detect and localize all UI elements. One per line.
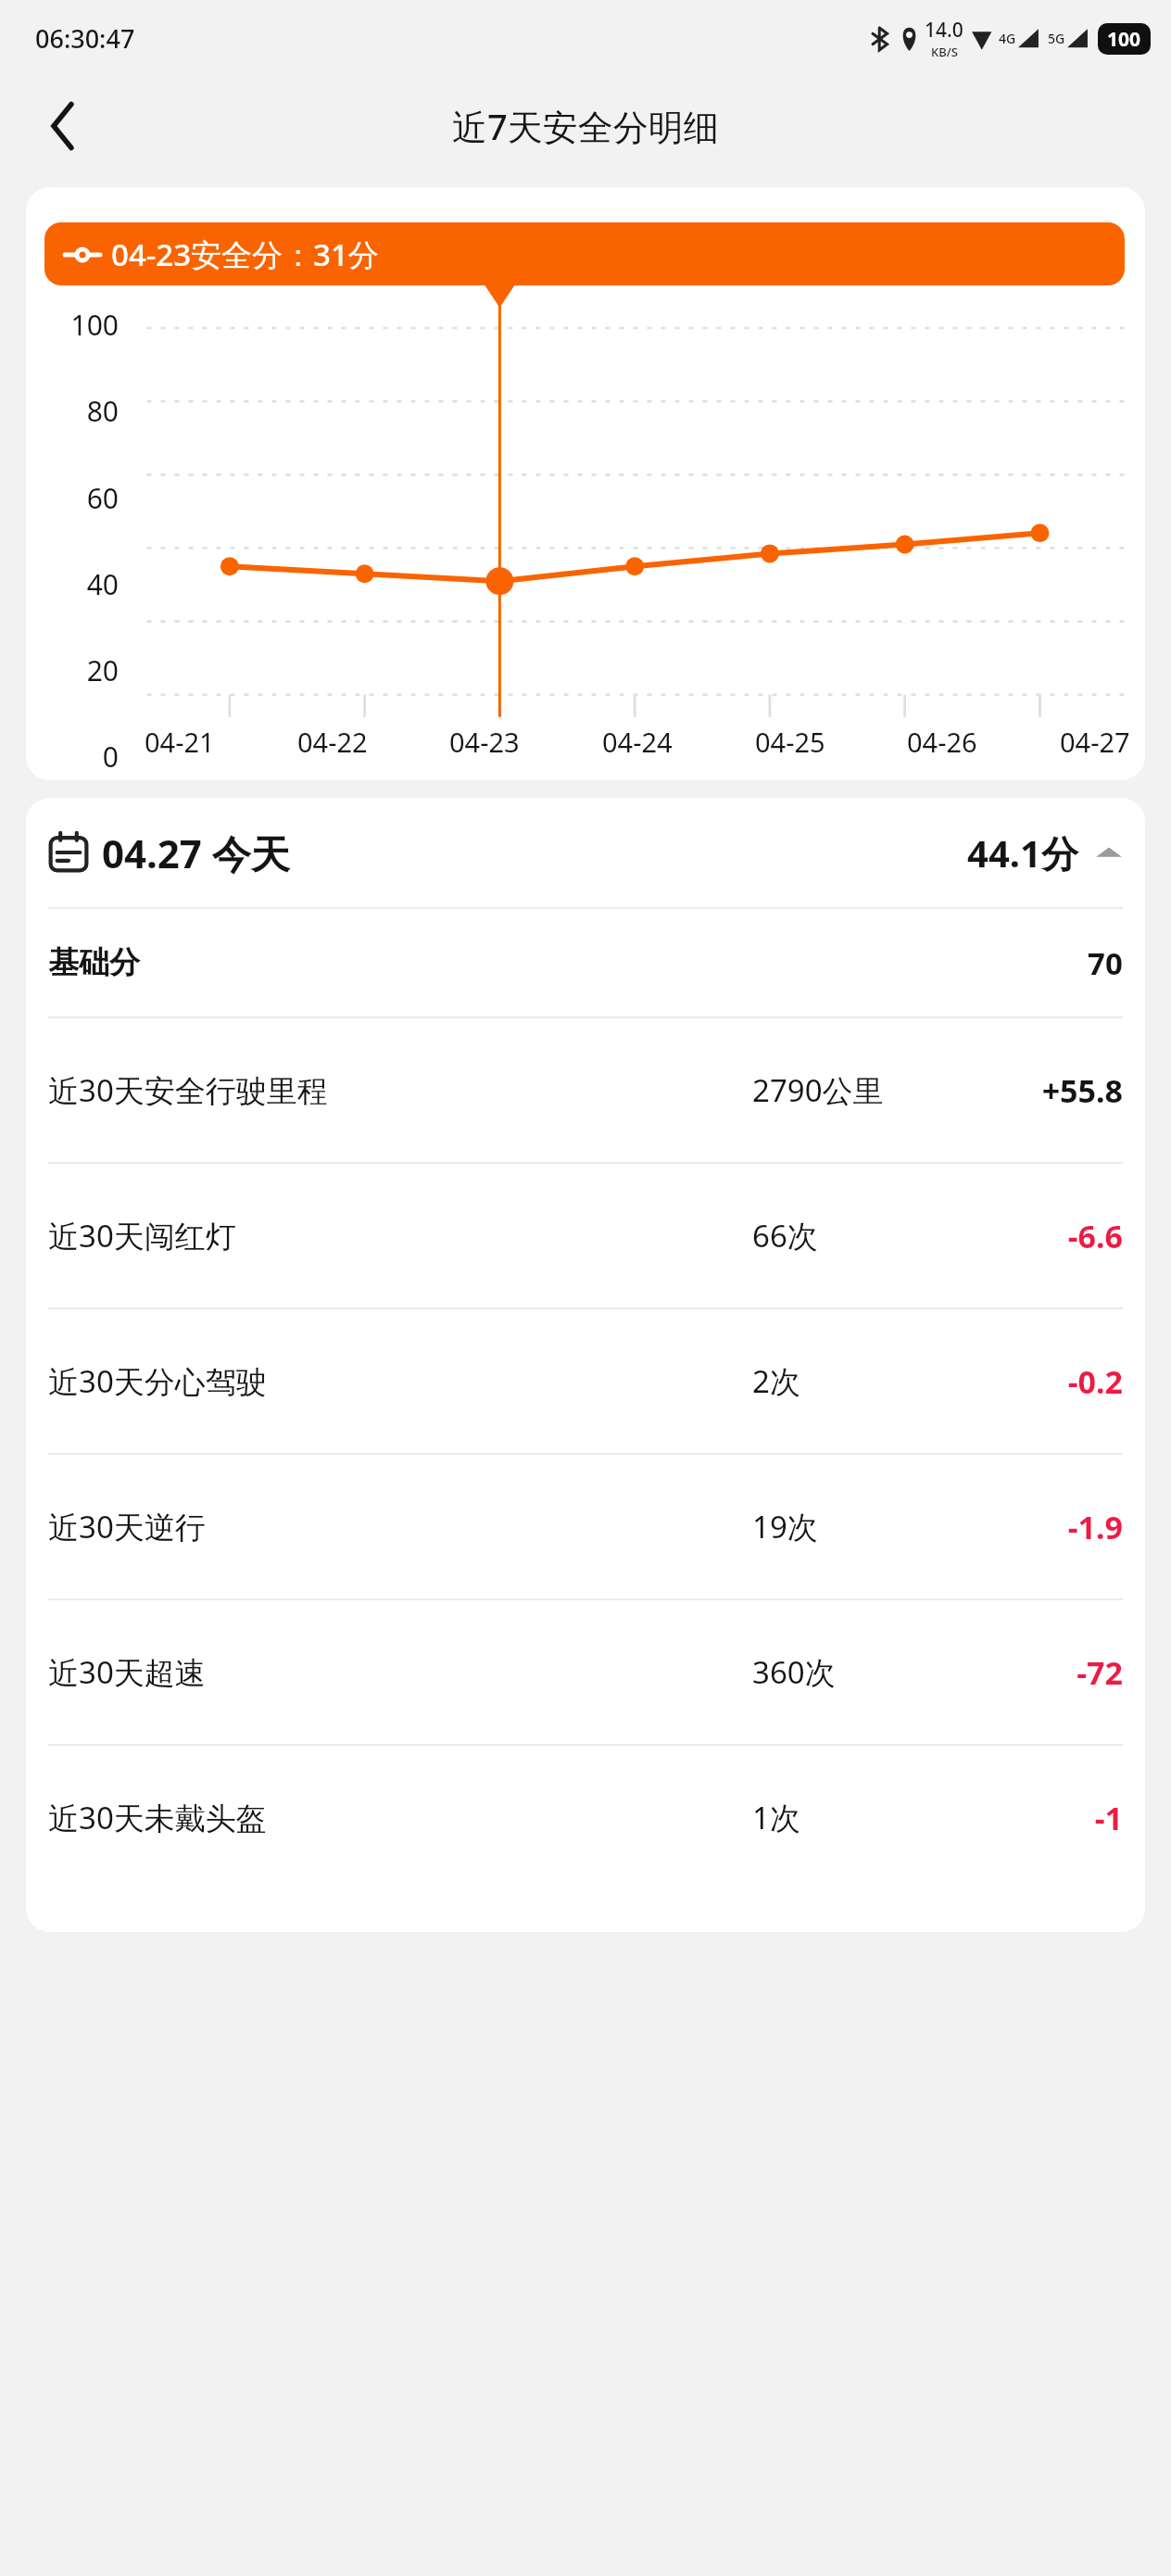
staticText: 04-24 xyxy=(602,724,673,760)
staticText: 近30天分心驾驶 xyxy=(48,1360,267,1402)
staticText: 1次 xyxy=(752,1797,800,1838)
staticText: 19次 xyxy=(752,1506,818,1547)
staticText: -72 xyxy=(984,1651,1123,1694)
button[interactable]: 近30天分心驾驶 xyxy=(26,1309,1145,1453)
staticText: 04-22 xyxy=(297,724,368,760)
staticText: 近30天安全行驶里程 xyxy=(48,1069,328,1111)
button[interactable]: Back xyxy=(20,83,106,169)
staticText: 基础分 xyxy=(48,943,140,982)
staticText: 近30天逆行 xyxy=(48,1506,206,1547)
staticText: 80 xyxy=(26,392,119,430)
button[interactable]: 04.27 今天 xyxy=(26,798,1145,907)
staticText: 近30天闯红灯 xyxy=(48,1215,236,1256)
staticText: 4G xyxy=(999,30,1016,47)
staticText: 近30天未戴头盔 xyxy=(48,1797,267,1838)
staticText: -0.2 xyxy=(984,1360,1123,1403)
staticText: -6.6 xyxy=(984,1215,1123,1257)
staticText: 近7天安全分明细 xyxy=(452,102,719,150)
staticText: 60 xyxy=(26,479,119,517)
staticText: 44.1分 xyxy=(967,827,1078,878)
staticText: 近30天超速 xyxy=(48,1651,206,1693)
button[interactable]: 04-23安全分：31分 xyxy=(44,222,1125,285)
staticText: 100 xyxy=(26,306,119,344)
button[interactable]: 近30天超速 xyxy=(26,1600,1145,1744)
staticText: -1 xyxy=(984,1797,1123,1839)
staticText: 04-27 xyxy=(1060,724,1130,760)
staticText: 04.27 今天 xyxy=(102,827,290,879)
button[interactable]: 近30天安全行驶里程 xyxy=(26,1018,1145,1162)
staticText: 2次 xyxy=(752,1360,800,1402)
button[interactable]: 近30天逆行 xyxy=(26,1455,1145,1598)
staticText: 2790公里 xyxy=(752,1069,884,1111)
button[interactable]: 基础分 xyxy=(26,909,1145,1017)
button[interactable]: 近30天闯红灯 xyxy=(26,1164,1145,1307)
staticText: +55.8 xyxy=(984,1069,1123,1112)
staticText: 04-23 xyxy=(449,724,520,760)
staticText: 04-23安全分：31分 xyxy=(111,234,379,275)
staticText: 06:30:47 xyxy=(35,21,135,56)
staticText: KB/S xyxy=(931,44,958,60)
staticText: 40 xyxy=(26,565,119,603)
staticText: 04-21 xyxy=(145,724,215,760)
staticText: 5G xyxy=(1048,30,1065,47)
staticText: 14.0 xyxy=(925,17,963,44)
staticText: 360次 xyxy=(752,1651,836,1693)
button[interactable]: 近30天未戴头盔 xyxy=(26,1746,1145,1889)
staticText: 66次 xyxy=(752,1215,818,1256)
staticText: 04-25 xyxy=(755,724,825,760)
staticText: 20 xyxy=(26,651,119,689)
staticText: 0 xyxy=(26,738,119,776)
staticText: 04-26 xyxy=(907,724,977,760)
staticText: 100 xyxy=(1107,26,1141,53)
staticText: -1.9 xyxy=(984,1506,1123,1548)
staticText: 70 xyxy=(1088,942,1123,984)
